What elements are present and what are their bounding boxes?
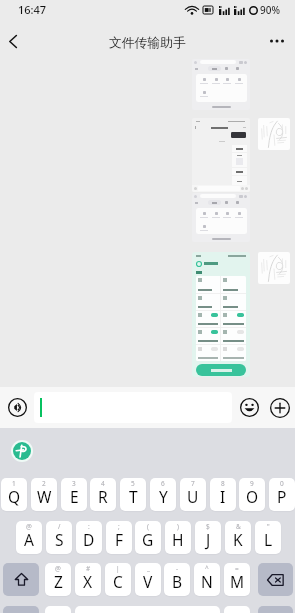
- button[interactable]: ": [255, 521, 281, 554]
- staticText: I: [220, 486, 226, 507]
- staticText: F: [115, 529, 124, 550]
- staticText: @: [26, 522, 32, 531]
- staticText: O: [246, 486, 259, 507]
- staticText: U: [187, 486, 199, 507]
- button[interactable]: Back: [1, 24, 25, 58]
- button[interactable]: 1: [1, 478, 27, 511]
- staticText: M: [230, 571, 245, 592]
- staticText: 5: [131, 479, 135, 488]
- button[interactable]: 3: [61, 478, 87, 511]
- button[interactable]: (: [135, 521, 161, 554]
- staticText: ): [177, 522, 179, 531]
- button[interactable]: @: [16, 521, 42, 554]
- staticText: 16:47: [18, 2, 47, 17]
- staticText: G: [142, 529, 154, 550]
- staticText: 90%: [260, 3, 280, 17]
- button[interactable]: Shift: [3, 563, 39, 596]
- button[interactable]: 5: [120, 478, 146, 511]
- staticText: P: [277, 486, 287, 507]
- button[interactable]: ): [165, 521, 191, 554]
- button[interactable]: =: [224, 563, 250, 596]
- button[interactable]: -: [164, 563, 190, 596]
- button[interactable]: Input method: [13, 442, 31, 460]
- button[interactable]: 2: [31, 478, 57, 511]
- staticText: T: [129, 486, 138, 507]
- staticText: D: [83, 529, 95, 550]
- staticText: B: [172, 571, 183, 592]
- staticText: S: [55, 529, 64, 550]
- staticText: 6: [161, 479, 165, 488]
- button[interactable]: @: [45, 563, 71, 596]
- staticText: X: [83, 571, 93, 592]
- staticText: K: [233, 529, 243, 550]
- staticText: (: [147, 522, 149, 531]
- staticText: R: [98, 486, 108, 507]
- button[interactable]: Symbols: [3, 606, 39, 613]
- button[interactable]: 6: [150, 478, 176, 511]
- staticText: ;: [118, 522, 120, 531]
- button[interactable]: 8: [210, 478, 236, 511]
- button[interactable]: :: [76, 521, 102, 554]
- staticText: 7: [191, 479, 195, 488]
- staticText: ^: [205, 564, 209, 573]
- button[interactable]: 9: [239, 478, 265, 511]
- staticText: 2: [42, 479, 46, 488]
- button[interactable]: More options: [263, 24, 291, 58]
- button[interactable]: ^: [194, 563, 220, 596]
- staticText: 9: [250, 479, 254, 488]
- staticText: N: [201, 571, 213, 592]
- staticText: :: [88, 522, 90, 531]
- button[interactable]: Comma: [45, 606, 71, 613]
- staticText: /: [58, 522, 61, 531]
- staticText: -: [176, 564, 179, 573]
- button[interactable]: |: [105, 563, 131, 596]
- button[interactable]: Backspace: [258, 563, 293, 596]
- staticText: V: [143, 571, 153, 592]
- button[interactable]: _: [135, 563, 161, 596]
- staticText: Z: [54, 571, 63, 592]
- staticText: 4: [101, 479, 105, 488]
- staticText: 3: [72, 479, 76, 488]
- staticText: Q: [8, 486, 21, 507]
- staticText: |: [116, 564, 120, 573]
- button[interactable]: Emoji: [234, 387, 265, 428]
- staticText: L: [264, 529, 273, 550]
- staticText: 0: [280, 479, 284, 488]
- button[interactable]: [34, 392, 232, 423]
- button[interactable]: 4: [90, 478, 116, 511]
- button[interactable]: More functions: [264, 387, 295, 428]
- button[interactable]: #: [75, 563, 101, 596]
- staticText: =: [235, 564, 239, 573]
- button[interactable]: $: [195, 521, 221, 554]
- staticText: _: [147, 564, 150, 573]
- staticText: @: [55, 564, 61, 573]
- button[interactable]: ;: [106, 521, 132, 554]
- staticText: ": [267, 522, 270, 531]
- staticText: #: [86, 564, 91, 573]
- staticText: $: [206, 522, 210, 531]
- staticText: W: [37, 486, 52, 507]
- button[interactable]: 0: [269, 478, 295, 511]
- staticText: A: [24, 529, 34, 550]
- button[interactable]: &: [225, 521, 251, 554]
- staticText: &: [236, 522, 241, 531]
- staticText: 文件传输助手: [109, 35, 186, 51]
- staticText: Y: [159, 486, 168, 507]
- button[interactable]: Voice input: [1, 387, 33, 428]
- button[interactable]: Space: [75, 606, 220, 613]
- button[interactable]: 7: [180, 478, 206, 511]
- button[interactable]: Period: [224, 606, 250, 613]
- staticText: H: [172, 529, 184, 550]
- staticText: J: [206, 529, 211, 550]
- staticText: C: [113, 571, 123, 592]
- staticText: 8: [221, 479, 225, 488]
- button[interactable]: /: [46, 521, 72, 554]
- staticText: E: [70, 486, 79, 507]
- staticText: 1: [12, 479, 16, 488]
- button[interactable]: Enter: [258, 606, 293, 613]
